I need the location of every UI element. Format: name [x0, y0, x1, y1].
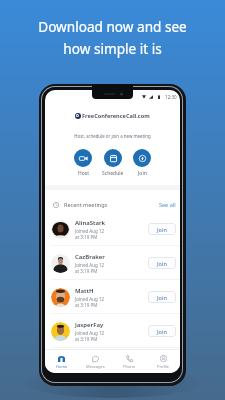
- button[interactable]: Join: [148, 325, 176, 337]
- button[interactable]: Messages: [78, 350, 112, 373]
- button[interactable]: Join: [133, 149, 151, 177]
- staticText: at 3:19 PM: [75, 302, 98, 308]
- staticText: JasperFay: [75, 321, 104, 329]
- staticText: CazBraker: [75, 253, 105, 261]
- button[interactable]: Host: [74, 149, 92, 177]
- button[interactable]: AlinaStark: [45, 212, 180, 246]
- button[interactable]: Join: [148, 257, 176, 269]
- staticText: Profile: [157, 364, 170, 369]
- staticText: Host: [78, 170, 89, 177]
- staticText: AlinaStark: [75, 219, 106, 227]
- staticText: Download now and see: [38, 17, 187, 36]
- button[interactable]: Profile: [146, 350, 180, 373]
- staticText: at 3:19 PM: [75, 268, 98, 274]
- button[interactable]: Phone: [112, 350, 146, 373]
- staticText: Host, schedule or join a new meeting: [45, 133, 180, 139]
- button[interactable]: MattH: [45, 280, 180, 314]
- staticText: Joined Aug 12: [75, 262, 105, 268]
- staticText: Join: [157, 260, 167, 267]
- button[interactable]: Recent meetings: [45, 198, 180, 211]
- staticText: FreeConferenceCall.com: [82, 112, 150, 120]
- staticText: MattH: [75, 287, 94, 295]
- staticText: Recent meetings: [64, 201, 108, 208]
- staticText: Phone: [123, 364, 136, 369]
- staticText: Joined Aug 12: [75, 330, 105, 336]
- staticText: Joined Aug 12: [75, 296, 105, 302]
- staticText: Home: [56, 364, 68, 369]
- button[interactable]: Join: [148, 291, 176, 303]
- button[interactable]: Schedule: [102, 149, 124, 177]
- staticText: at 3:19 PM: [75, 234, 98, 240]
- staticText: how simple it is: [63, 39, 162, 58]
- button[interactable]: JasperFay: [45, 314, 180, 348]
- button[interactable]: CazBraker: [45, 246, 180, 280]
- staticText: Join: [157, 328, 167, 335]
- staticText: Join: [138, 170, 147, 177]
- staticText: at 3:19 PM: [75, 336, 98, 342]
- staticText: Schedule: [102, 170, 124, 177]
- staticText: Messages: [86, 364, 105, 369]
- staticText: 12:30: [165, 94, 177, 99]
- staticText: Join: [157, 294, 167, 301]
- button[interactable]: Home: [45, 350, 78, 373]
- button[interactable]: Join: [148, 223, 176, 235]
- staticText: See all: [159, 201, 176, 208]
- staticText: Joined Aug 12: [75, 228, 105, 234]
- staticText: Join: [157, 226, 167, 233]
